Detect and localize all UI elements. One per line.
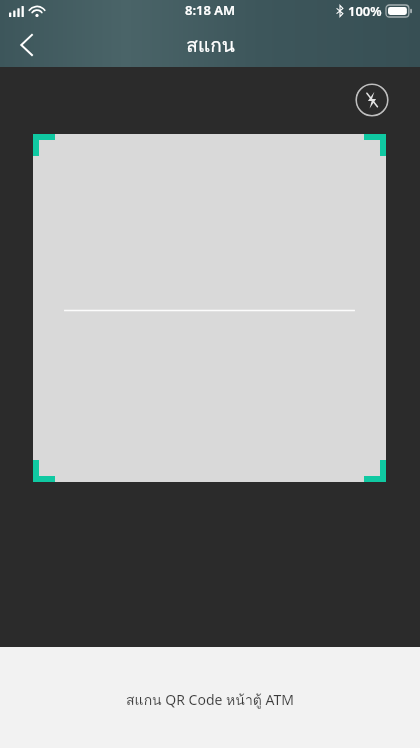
button[interactable]: Back <box>0 22 52 67</box>
staticText: 100% <box>348 2 382 20</box>
staticText: 8:18 AM <box>185 1 236 19</box>
button[interactable]: Toggle flash <box>355 83 389 117</box>
staticText: สแกน <box>186 30 235 60</box>
staticText: สแกน QR Code หน้าตู้ ATM <box>126 689 294 711</box>
